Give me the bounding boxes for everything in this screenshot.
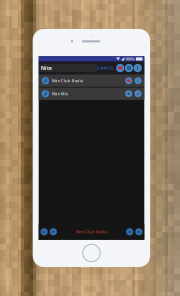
button[interactable]: Next	[135, 228, 142, 235]
staticText: Nite	[41, 64, 52, 72]
button[interactable]: CANCEL	[97, 64, 113, 73]
button[interactable]: Volume	[50, 228, 57, 235]
staticText: Nite Mix	[52, 91, 68, 96]
staticText: CANCEL	[97, 65, 113, 71]
button[interactable]: Nite Club Radio	[39, 74, 144, 87]
button[interactable]: Info	[133, 64, 142, 72]
button[interactable]: Favourites	[116, 64, 124, 72]
button[interactable]: Stop	[40, 228, 48, 235]
button[interactable]: Nite Mix	[39, 87, 144, 100]
staticText: Nite Club Radio	[76, 229, 107, 234]
staticText: 100%	[125, 56, 135, 62]
button[interactable]: Settings	[125, 64, 133, 72]
staticText: Nite Club Radio	[52, 78, 83, 83]
button[interactable]: Previous	[126, 228, 133, 235]
